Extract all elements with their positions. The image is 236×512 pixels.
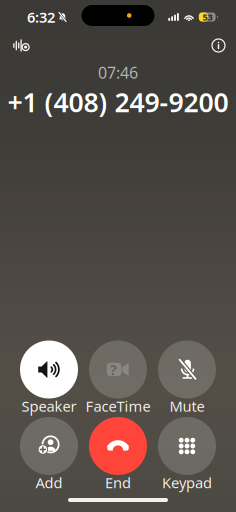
staticText: 53 <box>202 11 212 23</box>
staticText: Keypad <box>162 473 212 492</box>
staticText: Speaker <box>21 396 76 416</box>
staticText: 07:46 <box>98 62 138 83</box>
button[interactable]: Keypad <box>158 417 216 490</box>
button[interactable]: Mute <box>158 340 216 413</box>
staticText: End <box>105 473 131 492</box>
button[interactable]: Call info <box>212 39 225 52</box>
staticText: +1 (408) 249-9200 <box>7 84 228 120</box>
button[interactable]: Speaker <box>20 340 78 413</box>
button[interactable]: Add call <box>20 417 78 490</box>
button[interactable]: End call <box>89 417 147 490</box>
staticText: FaceTime <box>85 396 150 416</box>
staticText: Mute <box>169 396 204 416</box>
staticText: 6:32 <box>27 7 55 27</box>
staticText: ? <box>110 360 117 379</box>
button[interactable]: FaceTime <box>89 340 147 413</box>
staticText: Add <box>35 473 62 492</box>
button[interactable]: Audio effects <box>13 39 30 52</box>
